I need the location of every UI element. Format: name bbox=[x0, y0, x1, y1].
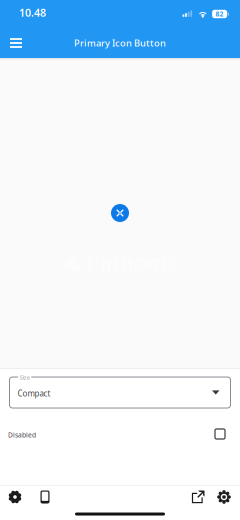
button[interactable]: Close bbox=[105, 198, 135, 228]
staticText: Primary Icon Button bbox=[74, 37, 166, 49]
button[interactable]: Device preview bbox=[32, 486, 58, 508]
staticText: Disabled bbox=[8, 431, 36, 439]
button[interactable]: Open navigation menu bbox=[2, 29, 30, 57]
button[interactable]: Compact bbox=[9, 377, 230, 408]
staticText: 82 bbox=[216, 10, 224, 18]
button[interactable]: Open in new window bbox=[185, 486, 211, 508]
staticText: 10.48 bbox=[19, 5, 46, 20]
staticText: Size bbox=[20, 374, 30, 381]
button[interactable]: Disabled bbox=[0, 428, 240, 440]
button[interactable]: Toggle theme bbox=[211, 486, 237, 508]
button[interactable]: Settings bbox=[2, 486, 28, 508]
staticText: Compact bbox=[17, 388, 50, 399]
